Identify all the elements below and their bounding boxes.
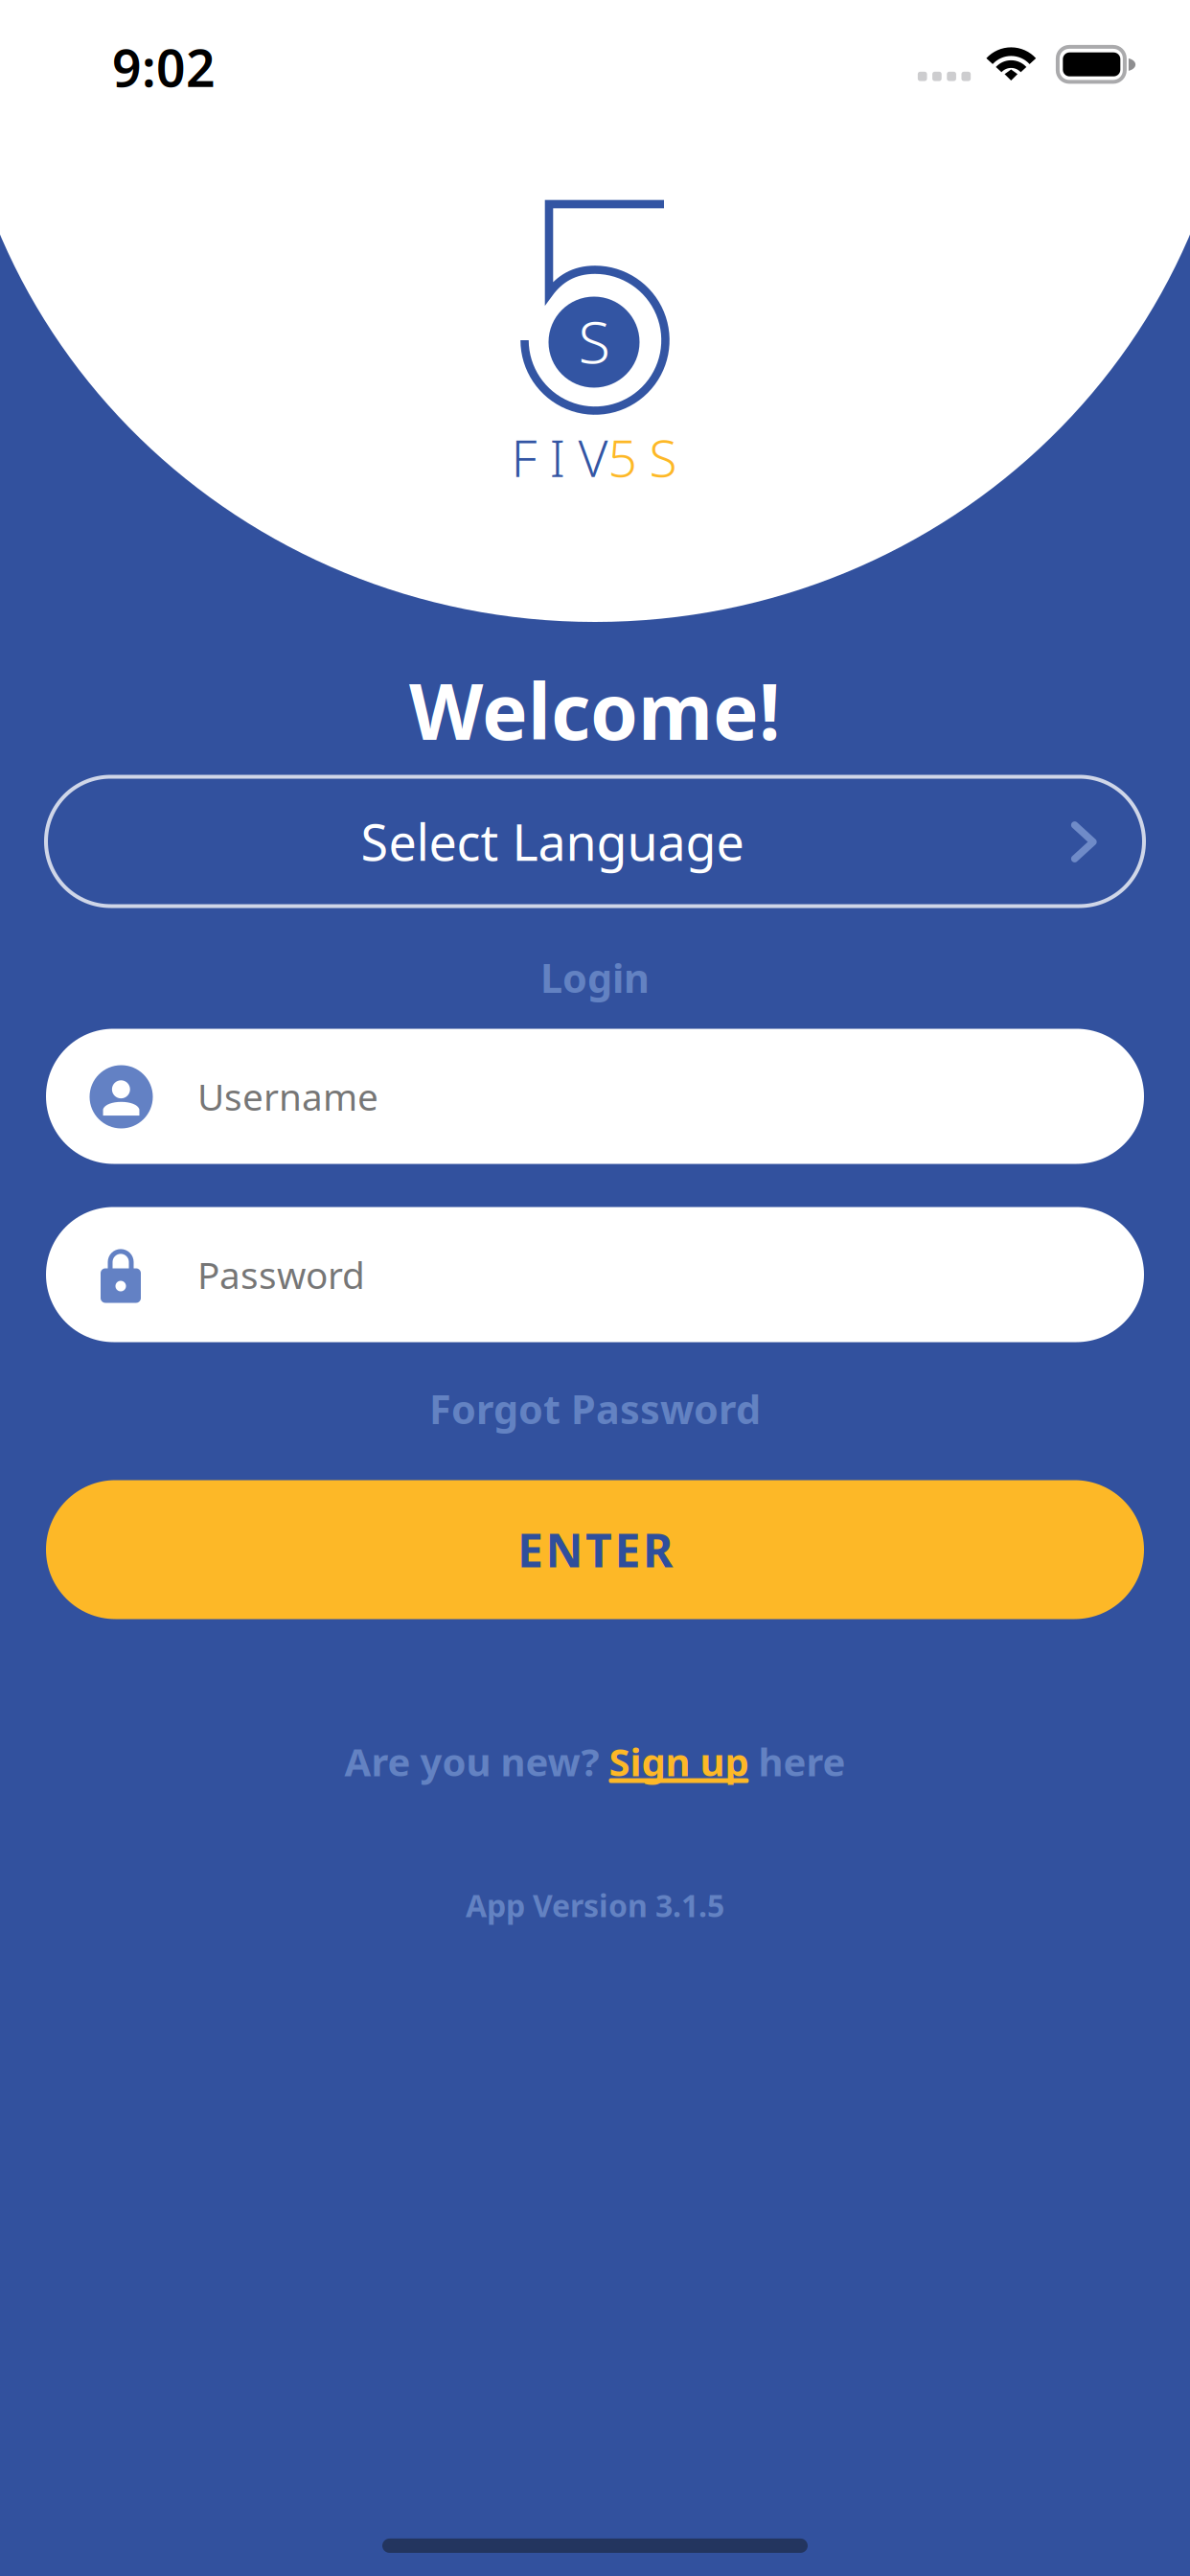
staticText: Welcome! — [409, 659, 781, 761]
staticText: Sign up — [609, 1736, 749, 1787]
staticText: here — [749, 1736, 846, 1787]
staticText: Login — [540, 951, 650, 1004]
staticText: Select Language — [361, 808, 744, 875]
staticText: FIV — [511, 423, 608, 491]
staticText: Password — [197, 1250, 365, 1299]
button[interactable]: Password — [46, 1207, 1144, 1342]
button[interactable]: Username — [46, 1029, 1144, 1164]
staticText: 9:02 — [112, 33, 216, 101]
staticText: S — [578, 302, 610, 380]
staticText: App Version 3.1.5 — [466, 1885, 724, 1926]
staticText: Username — [197, 1072, 378, 1121]
staticText: 5S — [608, 423, 677, 491]
staticText: Are you new? — [344, 1736, 609, 1787]
staticText: Forgot Password — [429, 1382, 761, 1435]
button[interactable]: ENTER — [46, 1480, 1144, 1619]
button[interactable]: Select Language — [46, 777, 1144, 906]
button[interactable]: Forgot Password — [260, 1378, 930, 1439]
button[interactable]: Are you new? — [344, 1731, 846, 1792]
staticText: ENTER — [517, 1519, 673, 1580]
